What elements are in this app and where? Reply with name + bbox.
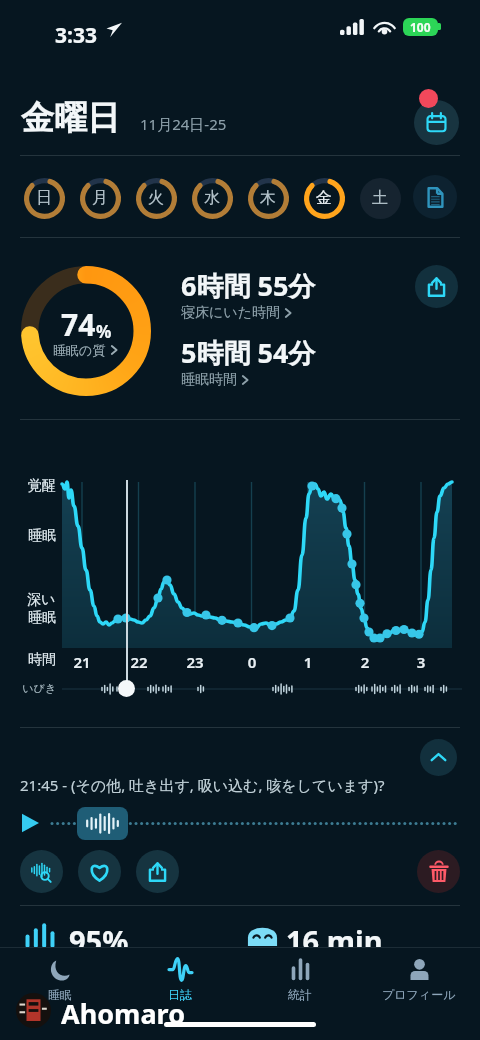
- staticText: 21:45 - (その他, 吐き出す, 吸い込む, 咳をしています)?: [20, 775, 385, 795]
- button[interactable]: Favorite: [78, 850, 121, 893]
- staticText: 睡眠の質: [53, 342, 106, 358]
- staticText: 木: [260, 188, 276, 208]
- staticText: 寝床にいた時間: [181, 304, 280, 322]
- staticText: 金曜日: [21, 97, 120, 139]
- staticText: 16 min: [286, 921, 383, 960]
- staticText: 74: [61, 304, 96, 345]
- staticText: 3: [407, 652, 435, 672]
- staticText: プロフィール: [382, 987, 456, 1002]
- staticText: 日: [36, 188, 52, 208]
- staticText: 統計: [288, 987, 312, 1002]
- button[interactable]: 睡眠: [15, 953, 105, 1005]
- button[interactable]: Delete: [417, 850, 460, 893]
- button[interactable]: Audio clip: [77, 807, 128, 840]
- staticText: 22: [125, 652, 153, 672]
- button[interactable]: 日誌: [135, 953, 225, 1005]
- staticText: 水: [204, 188, 220, 208]
- staticText: 金: [316, 188, 332, 208]
- staticText: 覚醒: [14, 477, 56, 495]
- staticText: 深い: [27, 591, 56, 609]
- button[interactable]: 6時間 55分: [181, 267, 316, 322]
- staticText: 0: [238, 652, 266, 672]
- button[interactable]: 74: [21, 266, 151, 396]
- button[interactable]: 月: [76, 174, 124, 222]
- staticText: 睡眠時間: [181, 371, 237, 389]
- staticText: いびき: [10, 681, 56, 695]
- button[interactable]: 火: [132, 174, 180, 222]
- button[interactable]: 土: [356, 174, 404, 222]
- button[interactable]: Share: [136, 850, 179, 893]
- button[interactable]: Collapse: [420, 739, 457, 776]
- staticText: 時間: [14, 651, 56, 669]
- button[interactable]: Analyze audio: [20, 850, 63, 893]
- button[interactable]: Share: [415, 265, 458, 308]
- staticText: 1: [294, 652, 322, 672]
- staticText: 3:33: [55, 21, 97, 50]
- staticText: 6時間 55分: [181, 267, 316, 304]
- staticText: 火: [148, 188, 164, 208]
- button[interactable]: 統計: [255, 953, 345, 1005]
- staticText: 月: [92, 188, 108, 208]
- button[interactable]: 水: [188, 174, 236, 222]
- staticText: 日誌: [168, 987, 192, 1002]
- staticText: 2: [351, 652, 379, 672]
- button[interactable]: Calendar: [414, 100, 459, 145]
- staticText: %: [96, 320, 112, 343]
- button[interactable]: 5時間 54分: [181, 334, 316, 389]
- button[interactable]: 木: [244, 174, 292, 222]
- staticText: 睡眠: [48, 987, 72, 1002]
- button[interactable]: Scrubber: [118, 680, 135, 697]
- staticText: 23: [181, 652, 209, 672]
- staticText: 21: [68, 652, 96, 672]
- staticText: 95%: [69, 921, 129, 960]
- staticText: 11月24日-25: [140, 114, 227, 134]
- staticText: 睡眠: [14, 527, 56, 545]
- staticText: 土: [372, 188, 388, 208]
- button[interactable]: 金: [300, 174, 348, 222]
- staticText: 100: [410, 19, 431, 35]
- staticText: 5時間 54分: [181, 334, 316, 371]
- staticText: 睡眠: [28, 609, 56, 627]
- button[interactable]: Notes: [413, 175, 457, 219]
- button[interactable]: 日: [20, 174, 68, 222]
- staticText: Ahomaro: [61, 995, 186, 1032]
- button[interactable]: プロフィール: [374, 953, 464, 1005]
